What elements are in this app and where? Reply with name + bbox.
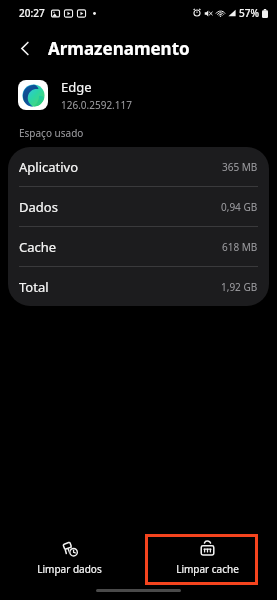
button[interactable]: Voltar: [8, 31, 42, 65]
staticText: 20:27: [19, 6, 45, 20]
button[interactable]: Dados: [8, 187, 269, 226]
staticText: Limpar dados: [37, 562, 102, 576]
button[interactable]: Cache: [8, 227, 269, 266]
staticText: 126.0.2592.117: [61, 98, 132, 112]
staticText: Total: [19, 278, 49, 296]
staticText: 365 MB: [222, 160, 258, 174]
button[interactable]: Total: [8, 267, 269, 306]
staticText: Edge: [61, 78, 92, 96]
staticText: Espaço usado: [19, 126, 84, 140]
staticText: 618 MB: [222, 240, 258, 254]
staticText: 57%: [239, 6, 259, 20]
button[interactable]: Limpar cache: [138, 531, 277, 585]
button[interactable]: Limpar dados: [0, 531, 138, 585]
staticText: 0,94 GB: [221, 200, 258, 214]
staticText: Aplicativo: [19, 158, 79, 176]
staticText: Limpar cache: [176, 562, 239, 576]
staticText: Dados: [19, 198, 58, 216]
staticText: Cache: [19, 238, 57, 256]
button[interactable]: Aplicativo: [8, 147, 269, 186]
staticText: 1,92 GB: [221, 280, 258, 294]
staticText: Armazenamento: [48, 37, 190, 60]
